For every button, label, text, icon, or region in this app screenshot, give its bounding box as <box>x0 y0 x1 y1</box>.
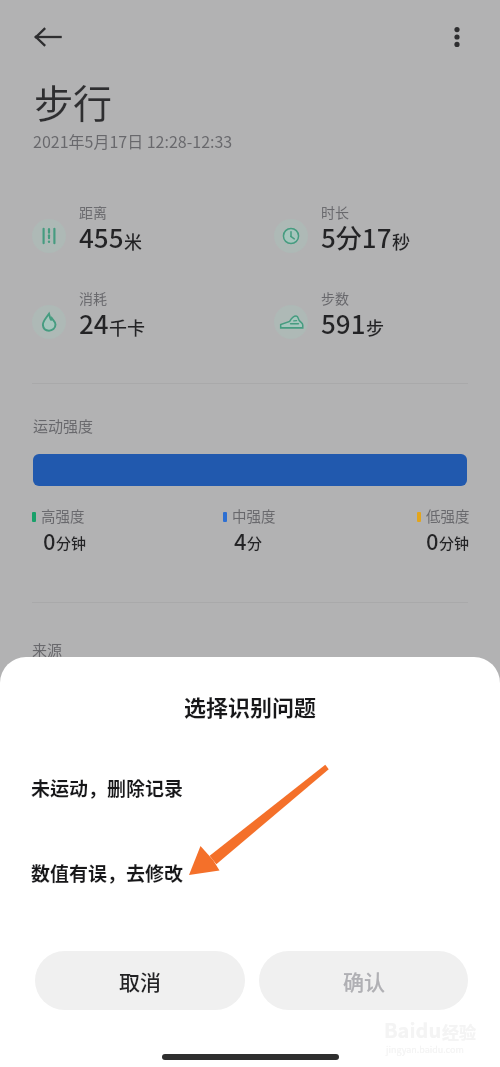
staticText: 经验 <box>442 1019 476 1044</box>
button[interactable]: 距离 <box>32 202 142 260</box>
staticText: 消耗 <box>79 288 107 308</box>
staticText: 步行 <box>34 73 113 129</box>
staticText: 5分17 <box>321 218 392 256</box>
staticText: 步 <box>366 314 384 340</box>
button[interactable]: 未运动，删除记录 <box>0 760 500 816</box>
staticText: 来源 <box>32 639 63 661</box>
staticText: 取消 <box>119 966 161 996</box>
staticText: 分钟 <box>56 532 87 554</box>
staticText: 运动强度 <box>33 415 94 437</box>
staticText: Baidu <box>384 1015 442 1044</box>
button[interactable]: More options <box>433 13 481 61</box>
staticText: 低强度 <box>426 505 470 526</box>
staticText: 时长 <box>321 202 349 222</box>
button[interactable]: 数值有误，去修改 <box>0 845 500 901</box>
staticText: 591 <box>321 304 366 342</box>
button[interactable]: 步数 <box>274 288 384 346</box>
button[interactable]: 取消 <box>35 951 245 1010</box>
staticText: jingyan.baidu.com <box>386 1043 464 1056</box>
staticText: 未运动，删除记录 <box>31 774 184 802</box>
staticText: 秒 <box>392 228 410 254</box>
staticText: 距离 <box>79 202 107 222</box>
staticText: 0 <box>426 524 439 556</box>
staticText: 24 <box>79 304 109 342</box>
staticText: 高强度 <box>41 505 85 526</box>
staticText: 455 <box>79 218 124 256</box>
staticText: 步数 <box>321 288 349 308</box>
staticText: 千卡 <box>109 314 145 340</box>
staticText: 分钟 <box>439 532 470 554</box>
staticText: 数值有误，去修改 <box>31 859 184 887</box>
button[interactable]: 时长 <box>274 202 410 260</box>
staticText: 2021年5月17日 12:28-12:33 <box>33 129 233 152</box>
staticText: 分 <box>247 532 263 554</box>
button[interactable]: Back <box>24 13 72 61</box>
staticText: 米 <box>124 228 142 254</box>
staticText: 0 <box>43 524 56 556</box>
staticText: 选择识别问题 <box>0 690 500 722</box>
staticText: 中强度 <box>232 505 276 526</box>
button[interactable]: 确认 <box>259 951 468 1010</box>
staticText: 确认 <box>343 966 385 996</box>
button[interactable]: 消耗 <box>32 288 145 346</box>
staticText: 4 <box>234 524 247 556</box>
